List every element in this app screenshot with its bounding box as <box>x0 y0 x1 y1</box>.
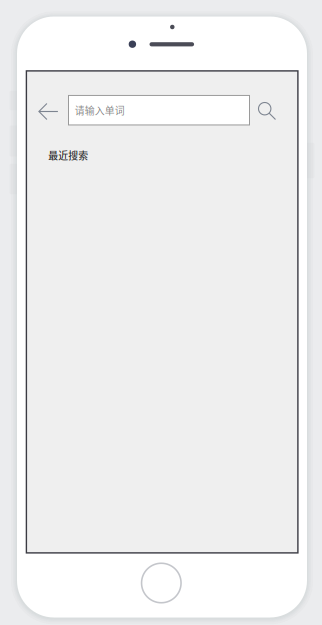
button[interactable]: Search <box>250 94 283 127</box>
button[interactable]: 请输入单词 <box>68 95 249 125</box>
button[interactable]: Home <box>141 563 181 603</box>
staticText: 请输入单词 <box>75 103 125 117</box>
button[interactable]: Back <box>31 95 66 127</box>
staticText: 最近搜索 <box>48 148 88 162</box>
